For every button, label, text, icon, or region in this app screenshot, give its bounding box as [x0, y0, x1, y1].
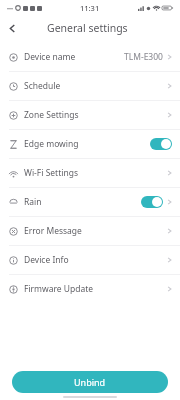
staticText: Firmware Update — [24, 283, 94, 295]
button[interactable]: Edge mowing toggle — [150, 138, 172, 150]
button[interactable]: Edge mowing — [0, 130, 180, 158]
staticText: Wi-Fi Settings — [24, 167, 78, 179]
staticText: Device Info — [24, 254, 69, 266]
staticText: Unbind — [74, 376, 106, 388]
staticText: Schedule — [24, 80, 61, 92]
staticText: Error Message — [24, 225, 82, 237]
button[interactable]: Unbind — [12, 371, 168, 393]
staticText: Device name — [24, 51, 76, 63]
staticText: Rain — [24, 196, 42, 208]
button[interactable]: Wi-Fi Settings — [0, 159, 180, 187]
staticText: Edge mowing — [24, 138, 79, 150]
staticText: TLM-E300 — [124, 51, 163, 63]
button[interactable]: Back — [0, 16, 24, 40]
staticText: General settings — [47, 21, 128, 35]
button[interactable]: Device Info — [0, 246, 180, 274]
button[interactable]: Rain — [0, 188, 180, 216]
button[interactable]: Error Message — [0, 217, 180, 245]
button[interactable]: Zone Settings — [0, 101, 180, 129]
button[interactable]: Rain toggle — [141, 196, 163, 208]
button[interactable]: Schedule — [0, 72, 180, 100]
staticText: Zone Settings — [24, 109, 79, 121]
button[interactable]: Device name — [0, 43, 180, 71]
staticText: 11:31 — [80, 3, 100, 13]
button[interactable]: Firmware Update — [0, 275, 180, 303]
